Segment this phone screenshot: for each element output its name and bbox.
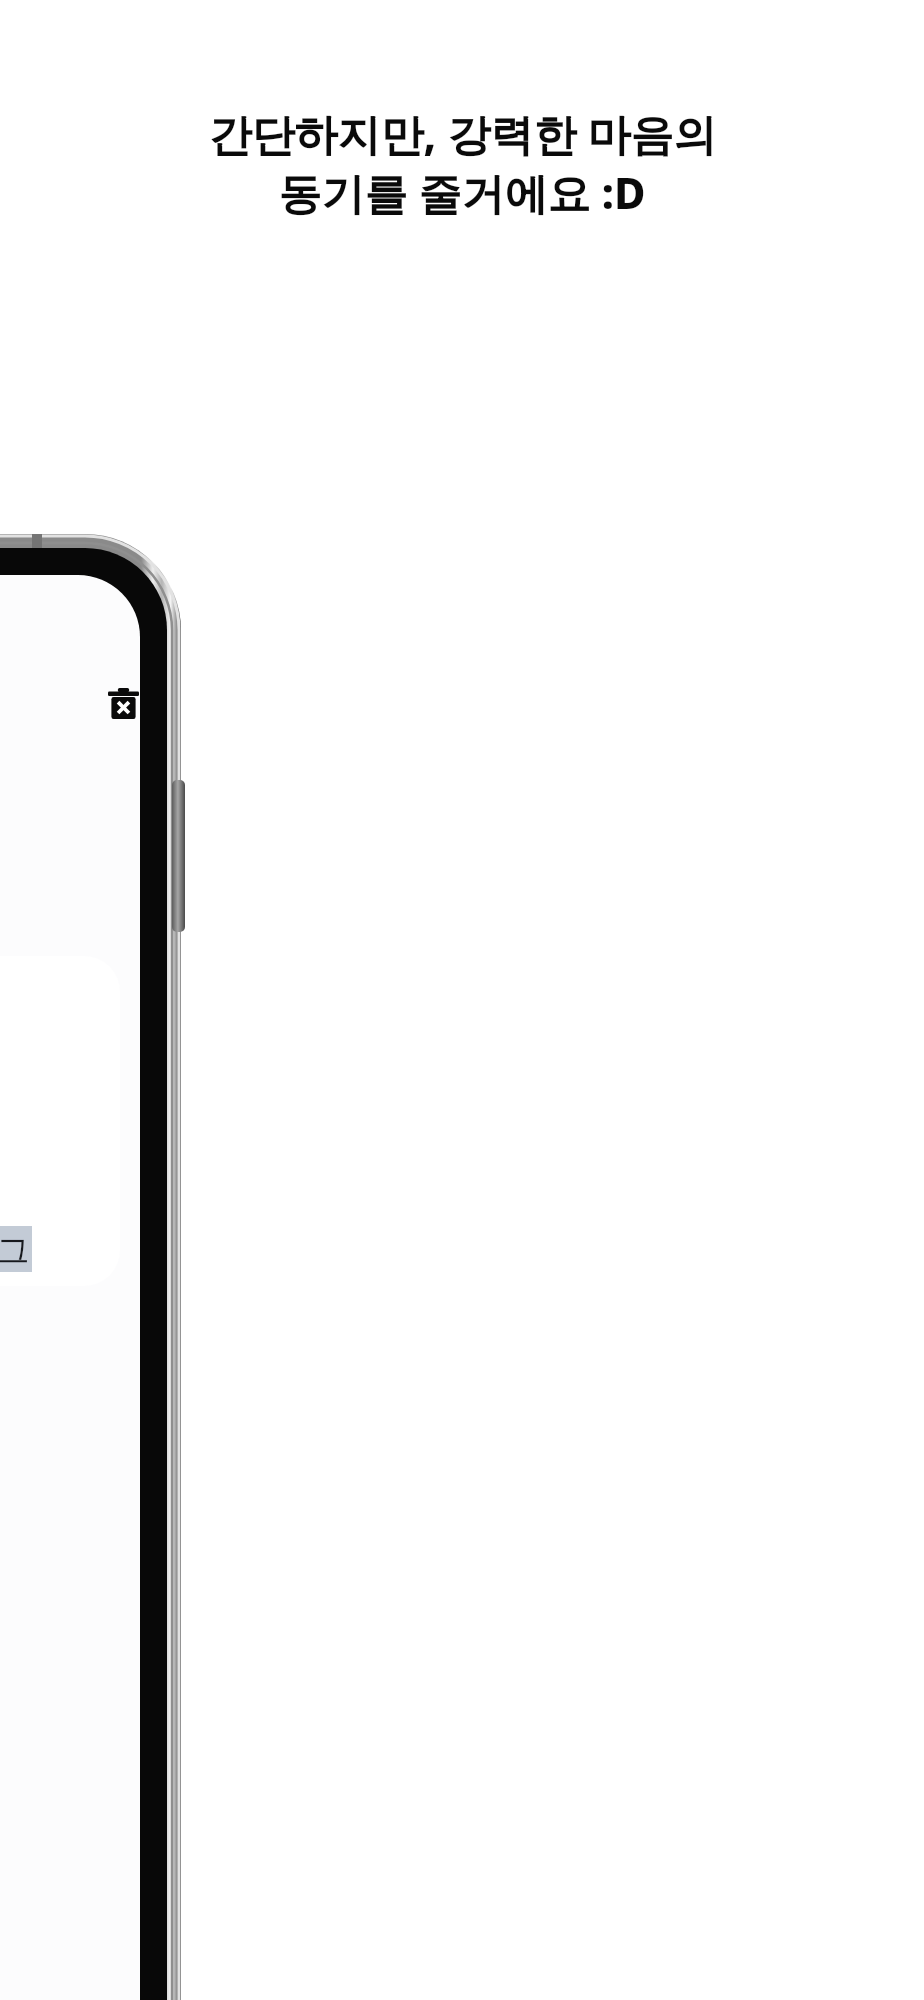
staticText: 침내 그 (0, 1226, 30, 1272)
button[interactable]: 침내 그 (0, 956, 120, 1286)
staticText: 동기를 줄거에요 :D (278, 163, 646, 222)
staticText: 간단하지만, 강력한 마음의 (208, 104, 717, 163)
button[interactable]: Delete (101, 681, 145, 725)
